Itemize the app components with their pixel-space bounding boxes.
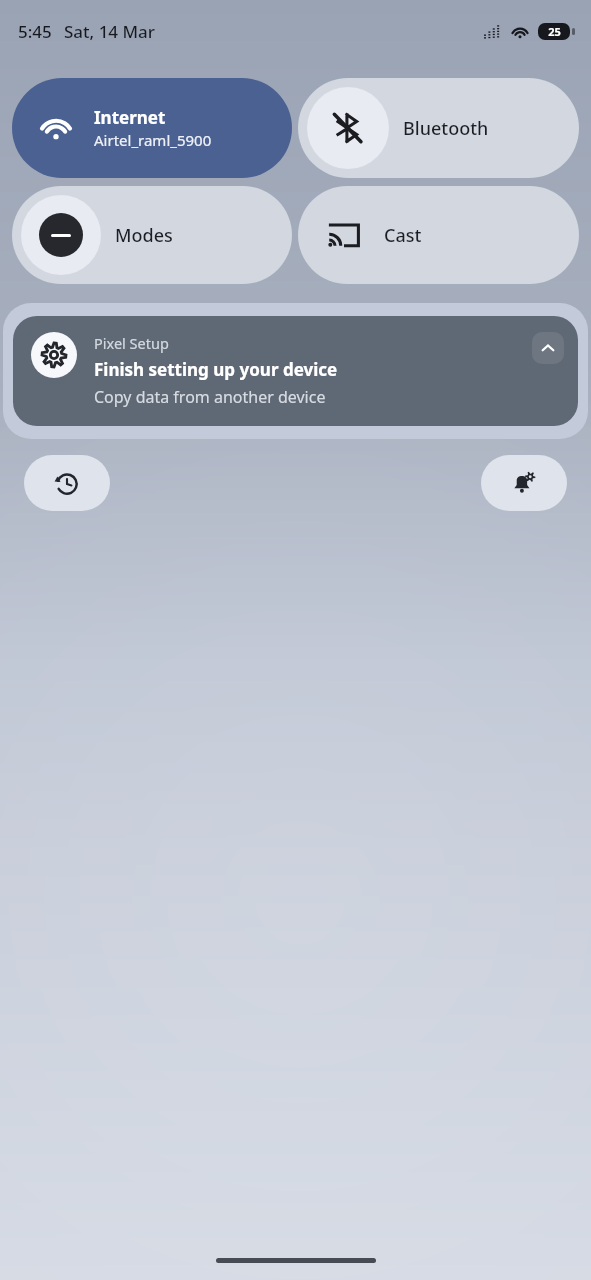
staticText: Finish setting up your device bbox=[94, 358, 338, 381]
button[interactable]: Modes bbox=[12, 186, 292, 284]
button[interactable]: Internet bbox=[12, 78, 292, 178]
staticText: 25 bbox=[548, 24, 561, 39]
button[interactable]: Cast bbox=[298, 186, 579, 284]
staticText: Copy data from another device bbox=[94, 386, 326, 408]
button[interactable]: History bbox=[24, 455, 110, 511]
staticText: Bluetooth bbox=[403, 116, 489, 141]
staticText: Sat, 14 Mar bbox=[64, 20, 156, 43]
button[interactable]: Notification settings bbox=[481, 455, 567, 511]
staticText: Cast bbox=[384, 223, 422, 248]
staticText: 5:45 bbox=[18, 20, 52, 43]
staticText: Airtel_raml_5900 bbox=[94, 130, 212, 150]
button[interactable]: Bluetooth bbox=[298, 78, 579, 178]
button[interactable]: Collapse bbox=[532, 332, 564, 364]
staticText: Pixel Setup bbox=[94, 333, 169, 353]
button[interactable]: Pixel Setup bbox=[13, 316, 578, 426]
staticText: Modes bbox=[115, 223, 173, 248]
staticText: Internet bbox=[94, 106, 166, 129]
